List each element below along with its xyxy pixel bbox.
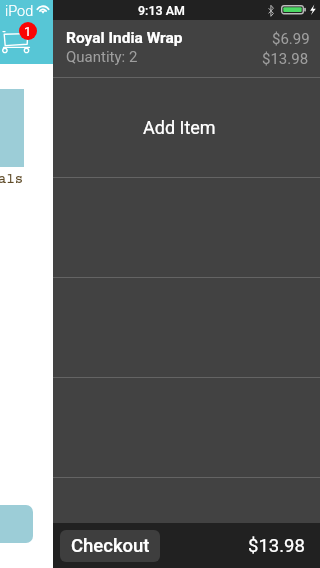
button[interactable]: Royal India Wrap [53,20,320,77]
button[interactable]: Add Item [53,78,320,177]
staticText: Royal India Wrap [66,29,183,47]
staticText: iPod [5,3,34,20]
staticText: 9:13 AM [138,3,185,18]
staticText: 1 [24,24,32,39]
staticText: Add Item [143,117,216,138]
button[interactable]: Checkout [60,530,160,562]
staticText: Quantity: 2 [66,48,138,66]
staticText: $6.99 [272,30,310,48]
staticText: $13.98 [248,535,305,557]
staticText: $13.98 [262,50,309,68]
button[interactable]: Cart [0,30,32,54]
staticText: als [0,171,24,187]
staticText: Checkout [71,535,150,557]
